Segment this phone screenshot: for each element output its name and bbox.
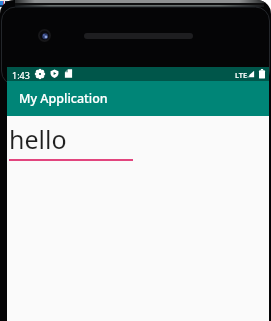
button[interactable]: My Application bbox=[7, 81, 269, 116]
staticText: hello bbox=[9, 122, 67, 156]
staticText: My Application bbox=[19, 90, 108, 107]
staticText: LTE bbox=[235, 70, 248, 80]
staticText: 1:43 bbox=[12, 69, 30, 81]
